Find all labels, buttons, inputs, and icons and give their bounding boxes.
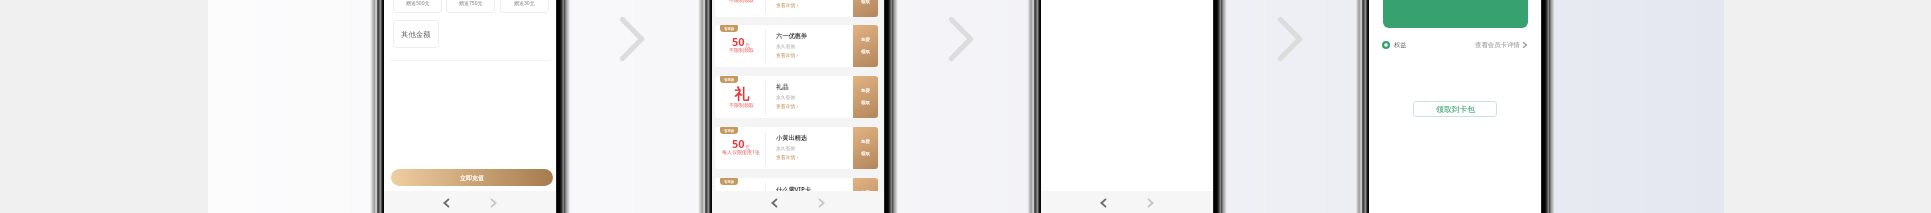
staticText: 不限制领取 xyxy=(729,0,754,3)
staticText: 领取 xyxy=(861,49,870,55)
button[interactable]: Forward xyxy=(813,193,830,210)
button[interactable]: Back xyxy=(766,193,783,210)
staticText: 永久有效 xyxy=(776,145,796,151)
button[interactable]: Next step xyxy=(616,16,648,62)
staticText: 赠送750元 xyxy=(459,0,483,7)
staticText: 什么需VIP卡 xyxy=(776,185,812,193)
button[interactable]: Next step xyxy=(945,16,977,62)
button[interactable]: Next step xyxy=(1274,16,1306,62)
staticText: 20 xyxy=(732,187,745,202)
staticText: 领取到卡包 xyxy=(1436,104,1475,114)
staticText: 专享券 xyxy=(724,180,735,184)
button[interactable]: 赠送500元 xyxy=(393,0,442,13)
staticText: 礼 xyxy=(734,85,749,104)
staticText: 专享券 xyxy=(724,129,735,133)
staticText: 赠送30元 xyxy=(514,0,535,7)
staticText: 领取 xyxy=(861,0,870,5)
button[interactable]: 赠送750元 xyxy=(446,0,495,13)
button[interactable]: Claim for free xyxy=(853,76,878,118)
staticText: 不限制领取 xyxy=(729,102,754,108)
staticText: 免费 xyxy=(861,37,870,43)
staticText: 50 xyxy=(732,34,745,49)
button[interactable]: 赠送30元 xyxy=(500,0,549,13)
staticText: 免费 xyxy=(861,190,870,196)
button[interactable]: Forward xyxy=(1142,193,1159,210)
staticText: 礼品 xyxy=(776,83,789,91)
button[interactable]: 领取到卡包 xyxy=(1413,101,1497,117)
staticText: 其他金额 xyxy=(401,30,431,39)
button[interactable]: 礼 xyxy=(715,76,853,118)
staticText: 查看详情 › xyxy=(776,2,798,9)
staticText: 查看详情 › xyxy=(776,154,798,161)
button[interactable]: 50 xyxy=(715,25,853,67)
staticText: 领取 xyxy=(861,100,870,106)
staticText: 小黄出精选 xyxy=(776,134,807,142)
staticText: 元 xyxy=(745,144,750,150)
staticText: 六一优惠券 xyxy=(776,32,807,40)
staticText: 查看详情 › xyxy=(776,205,798,212)
button[interactable]: 30 xyxy=(715,0,853,17)
staticText: 不限制领取 xyxy=(729,47,754,53)
button[interactable]: 50 xyxy=(715,127,853,169)
staticText: 专享券 xyxy=(724,27,735,31)
button[interactable]: Back xyxy=(1095,193,1112,210)
button[interactable]: Claim for free xyxy=(853,178,878,213)
staticText: 50 xyxy=(732,136,745,151)
button[interactable]: Claim for free xyxy=(853,25,878,67)
staticText: 永久有效 xyxy=(776,94,796,100)
button[interactable]: 权益 xyxy=(1382,36,1529,54)
button[interactable]: Back xyxy=(438,193,455,210)
staticText: 免费 xyxy=(861,139,870,145)
staticText: 免费 xyxy=(861,88,870,94)
button[interactable]: 立即充值 xyxy=(391,169,553,186)
button[interactable]: Forward xyxy=(485,193,502,210)
staticText: 立即充值 xyxy=(460,174,484,182)
button[interactable]: 20 xyxy=(715,178,853,213)
button[interactable]: Claim for free xyxy=(853,0,878,17)
staticText: 查看会员卡详情 xyxy=(1475,41,1520,49)
staticText: 查看详情 › xyxy=(776,103,798,110)
staticText: 领取 xyxy=(861,151,870,157)
staticText: 赠送500元 xyxy=(406,0,430,7)
staticText: 永久有效 xyxy=(776,196,796,202)
button[interactable]: 其他金额 xyxy=(393,20,439,48)
staticText: 永久有效 xyxy=(776,43,796,49)
staticText: 权益 xyxy=(1394,41,1407,49)
staticText: 查看详情 › xyxy=(776,52,798,59)
staticText: 专享券 xyxy=(724,78,735,82)
button[interactable]: Claim for free xyxy=(853,127,878,169)
staticText: 元 xyxy=(745,42,750,48)
staticText: 每人仅限使用1张 xyxy=(722,149,760,156)
